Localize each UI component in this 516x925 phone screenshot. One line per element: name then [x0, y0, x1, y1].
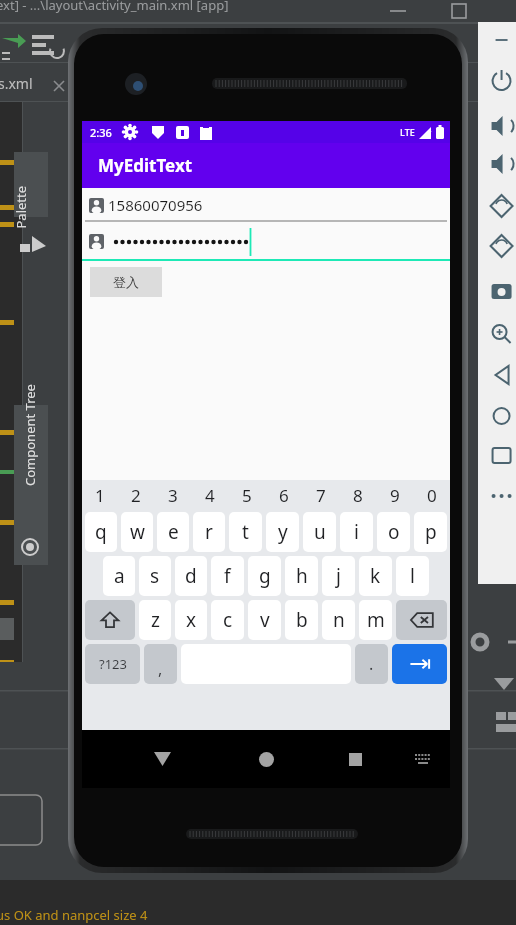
- staticText: z: [151, 607, 160, 633]
- staticText: j: [336, 563, 341, 589]
- button[interactable]: .: [355, 644, 388, 684]
- staticText: h: [296, 563, 308, 589]
- button[interactable]: z: [139, 600, 171, 640]
- staticText: 0: [427, 484, 437, 507]
- staticText: MyEditText: [98, 154, 193, 177]
- button[interactable]: d: [175, 556, 207, 596]
- staticText: LTE: [400, 126, 415, 138]
- staticText: q: [95, 519, 107, 545]
- staticText: k: [370, 563, 381, 589]
- staticText: p: [425, 519, 437, 545]
- button[interactable]: [82, 222, 450, 261]
- staticText: n: [333, 607, 345, 633]
- staticText: v: [260, 607, 270, 633]
- button[interactable]: c: [211, 600, 244, 640]
- button[interactable]: q: [85, 512, 117, 552]
- staticText: 8: [353, 484, 363, 507]
- staticText: c: [223, 607, 233, 633]
- button[interactable]: 0: [413, 480, 450, 510]
- button[interactable]: g: [248, 556, 281, 596]
- staticText: 登入: [113, 274, 139, 290]
- staticText: 5: [242, 484, 252, 507]
- other: Backspace: [410, 611, 434, 629]
- button[interactable]: f: [211, 556, 244, 596]
- button[interactable]: 5: [228, 480, 265, 510]
- staticText: i: [354, 519, 359, 545]
- staticText: t: [242, 519, 249, 545]
- button[interactable]: ,: [144, 644, 177, 684]
- staticText: us OK and nanpcel size 4: [0, 906, 148, 924]
- button[interactable]: b: [285, 600, 318, 640]
- other: Emulator controls: [478, 22, 516, 584]
- staticText: s.xml: [0, 74, 33, 93]
- button[interactable]: 15860070956: [82, 188, 450, 222]
- staticText: Palette: [11, 185, 29, 228]
- button[interactable]: 8: [339, 480, 376, 510]
- button[interactable]: k: [359, 556, 392, 596]
- button[interactable]: Recent apps: [335, 739, 375, 779]
- button[interactable]: Back: [142, 739, 182, 779]
- button[interactable]: p: [414, 512, 447, 552]
- staticText: ?123: [99, 655, 127, 673]
- button[interactable]: ?123: [85, 644, 140, 684]
- staticText: ext] - ...\layout\activity_main.xml [app…: [0, 0, 229, 14]
- button[interactable]: 3: [154, 480, 191, 510]
- button[interactable]: 2: [118, 480, 154, 510]
- button[interactable]: MyEditText: [82, 143, 450, 188]
- staticText: f: [224, 563, 231, 589]
- button[interactable]: j: [322, 556, 355, 596]
- button[interactable]: 1: [82, 480, 118, 510]
- button[interactable]: Backspace: [396, 600, 447, 640]
- button[interactable]: t: [229, 512, 262, 552]
- staticText: 6: [279, 484, 289, 507]
- button[interactable]: w: [121, 512, 153, 552]
- button[interactable]: y: [266, 512, 299, 552]
- button[interactable]: l: [396, 556, 429, 596]
- staticText: 1: [95, 484, 105, 507]
- other: Shift: [100, 610, 120, 630]
- button[interactable]: 7: [302, 480, 339, 510]
- button[interactable]: i: [340, 512, 373, 552]
- button[interactable]: 6: [265, 480, 302, 510]
- button[interactable]: Switch keyboard: [406, 742, 440, 776]
- staticText: Component Tree: [21, 384, 39, 486]
- staticText: 3: [168, 484, 178, 507]
- staticText: r: [205, 519, 213, 545]
- button[interactable]: 登入: [90, 267, 162, 297]
- staticText: 9: [390, 484, 400, 507]
- staticText: b: [296, 607, 308, 633]
- button[interactable]: Home: [246, 739, 286, 779]
- staticText: ,: [158, 658, 163, 680]
- staticText: e: [168, 519, 179, 545]
- button[interactable]: m: [359, 600, 392, 640]
- staticText: l: [410, 563, 415, 589]
- staticText: a: [114, 563, 125, 589]
- button[interactable]: x: [175, 600, 207, 640]
- staticText: 7: [316, 484, 326, 507]
- staticText: o: [388, 519, 400, 545]
- staticText: 15860070956: [108, 195, 203, 215]
- button[interactable]: Enter: [392, 644, 447, 684]
- button[interactable]: 9: [376, 480, 413, 510]
- button[interactable]: s: [139, 556, 171, 596]
- button[interactable]: h: [285, 556, 318, 596]
- staticText: 2: [131, 484, 141, 507]
- staticText: s: [150, 563, 160, 589]
- staticText: x: [186, 607, 197, 633]
- button[interactable]: a: [103, 556, 135, 596]
- staticText: m: [367, 607, 385, 633]
- button[interactable]: n: [322, 600, 355, 640]
- other: Enter: [408, 656, 432, 672]
- button[interactable]: o: [377, 512, 410, 552]
- staticText: w: [130, 519, 145, 545]
- button[interactable]: v: [248, 600, 281, 640]
- button[interactable]: u: [303, 512, 336, 552]
- staticText: 2:36: [90, 125, 112, 140]
- button[interactable]: Shift: [85, 600, 135, 640]
- button[interactable]: 4: [191, 480, 228, 510]
- button[interactable]: e: [157, 512, 189, 552]
- button[interactable]: r: [193, 512, 225, 552]
- staticText: 4: [205, 484, 215, 507]
- staticText: .: [369, 653, 374, 675]
